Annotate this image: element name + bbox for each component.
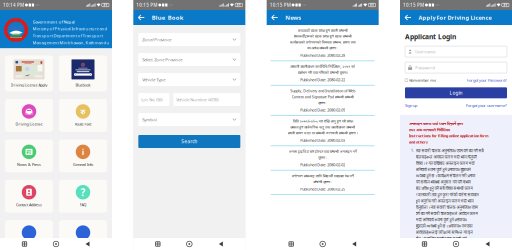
button[interactable]	[5, 220, 53, 250]
button[interactable]: Forgot your Password?	[467, 78, 507, 83]
staticText: अनला ड्राइभिङ बारे होल्डर पास सम्बन्धी अ…	[289, 149, 357, 154]
staticText: Route Fare	[74, 122, 91, 127]
staticText: 89	[503, 3, 507, 7]
staticText: Published Date: 2080-02-28	[300, 53, 345, 58]
staticText: FAQ	[79, 202, 86, 207]
staticText: Bluebook	[75, 82, 90, 87]
staticText: 10:14 PM	[3, 2, 24, 8]
staticText: Remember me	[409, 78, 436, 83]
staticText: Published Date: 2080-02-03	[300, 138, 345, 143]
button[interactable]: Driving License Apply	[5, 55, 53, 91]
button[interactable]: Bluebook	[59, 55, 107, 91]
button[interactable]: Back	[402, 10, 413, 25]
staticText: 89	[237, 3, 241, 7]
button[interactable]: News & Press	[5, 139, 53, 172]
staticText: 10:15 PM	[136, 2, 157, 8]
button[interactable]: Back	[480, 238, 494, 250]
button[interactable]: मनोनयन सम्बन्धाइ लागि शिक्षार्थी दरखास्त…	[271, 171, 375, 195]
staticText: Published Date: 2080-02-22	[300, 77, 345, 82]
button[interactable]: Back	[269, 10, 280, 25]
button[interactable]: Recent apps	[17, 238, 31, 250]
button[interactable]: मिति २०७९/०२/०५ गते देखि लागू हुने गरी प…	[271, 116, 375, 146]
button[interactable]: सरकारी सवारीसाधन कार्यविधि निर्देशिका, २…	[271, 61, 375, 86]
button[interactable]: Select Zone Province	[138, 53, 240, 66]
staticText: General Info	[73, 162, 93, 167]
button[interactable]: Zone/Province	[138, 33, 240, 46]
button[interactable]: Recent apps	[284, 238, 298, 250]
button[interactable]: Back	[136, 10, 147, 25]
button[interactable]: ?	[59, 180, 107, 213]
staticText: सम्बन्धी सूचना ।	[313, 179, 332, 184]
button[interactable]: Contact Address	[5, 180, 53, 213]
staticText: Instructions for filling online applicat…	[409, 133, 489, 138]
staticText: Contact Address	[16, 202, 42, 207]
button[interactable]: Search	[138, 135, 240, 148]
staticText: बुझाउने व्यवस्था हुने छ । प्रमाणपत्र नभए…	[416, 223, 473, 229]
button[interactable]	[59, 220, 107, 250]
staticText: नया सवारी चालक अनुमतिपत्र एवम वर्ग थप गर…	[416, 148, 484, 153]
staticText: संशोधन गरी पास गरिएको सम्बन्धी सूचना।	[298, 70, 348, 75]
staticText: Management Minbhawan, Kathmandu	[32, 40, 109, 45]
button[interactable]: Back	[80, 238, 94, 250]
button[interactable]: काठमाडौं सडक प्रदेश हुने सवारी सम्बन्धी	[271, 25, 375, 61]
staticText: गर्न सकिने ब्यवस्था अनुसार गर्न पर्ने मा…	[416, 179, 471, 185]
button[interactable]: Vehicle Type	[138, 73, 240, 86]
staticText: छैन । सम्बन्धित कार्यालयमा सम्पर्क गर्न	[416, 236, 467, 241]
staticText: Search	[181, 138, 197, 145]
staticText: का-प्रदेश सम्बन्धी सूचना ।	[307, 45, 338, 50]
staticText: 10:15 PM	[403, 2, 424, 8]
staticText: आवेदकहरूलाई परीक्षामा समिल्ल गराइने	[416, 230, 473, 235]
staticText: Password	[415, 65, 435, 70]
button[interactable]: Recent apps	[417, 238, 431, 250]
staticText: व्यवस्था हुने छ । कार्यक्रम संचालन गरी प…	[416, 173, 476, 178]
button[interactable]: Login	[405, 87, 507, 98]
staticText: Username	[415, 49, 435, 54]
staticText: 89	[370, 3, 374, 7]
button[interactable]: Home	[316, 238, 330, 250]
button[interactable]: General Info	[59, 139, 107, 172]
button[interactable]: रु	[59, 99, 107, 132]
button[interactable]: Symbol	[138, 113, 240, 126]
button[interactable]: Home	[49, 238, 63, 250]
staticText: बाट प्रविष्ट हुनु पर्ने सबै विषय सम्बन्ध…	[416, 186, 473, 191]
staticText: कार्यक्रमको मनोनयनको विषयमा सम्बन्ध, सूच…	[290, 40, 356, 44]
staticText: सकिने छ । सबै आवेदकहरूले अनलाइन फारम	[416, 242, 480, 247]
staticText: Zone/Province	[142, 37, 171, 42]
staticText: 10:15 PM	[270, 2, 291, 8]
staticText: and others	[409, 140, 428, 145]
staticText: Driving License Apply	[10, 82, 47, 87]
staticText: मिति २०७९/०२/०५ गते देखि लागू हुने गरी प…	[293, 119, 353, 124]
button[interactable]: Back	[347, 238, 361, 250]
staticText: सरकार हुने सार्वजनिक वाडु तया सवारीसाधन …	[290, 125, 355, 129]
button[interactable]: Supply, Delivery and Installation of Web	[271, 86, 375, 116]
staticText: रु	[80, 106, 85, 117]
staticText: News	[285, 13, 301, 21]
button[interactable]: Home	[449, 238, 463, 250]
staticText: Select Zone Province	[142, 57, 182, 62]
staticText: मनोनयन सम्बन्धाइ लागि शिक्षार्थी दरखास्त…	[292, 173, 354, 178]
staticText: हुन अनुरोध गरी अनलाइन फारम भर्दा ध्यान	[416, 198, 474, 204]
staticText: सरकारी सवारीसाधन कार्यविधि निर्देशिका, २…	[290, 64, 355, 69]
staticText: तथा अन्य जानकारी निर्देशिका	[409, 127, 450, 132]
staticText: सूचना ।	[318, 155, 327, 160]
button[interactable]: Home	[182, 238, 196, 250]
button[interactable]: Sign up	[405, 103, 417, 108]
button[interactable]: Driving License	[5, 99, 53, 132]
button[interactable]: Back	[214, 238, 228, 250]
staticText: चालकहरूले आवेदन फारम भर्दा ध्यान दिनुपर्…	[416, 154, 477, 160]
staticText: Published Date: 2080-02-02	[300, 162, 345, 167]
staticText: अनलाइन फारम भर्दा ध्यान दिनुपर्ने कुरा	[409, 121, 463, 126]
staticText: Published Date: 2080-02-25	[300, 187, 345, 192]
staticText: Applicant Login	[405, 32, 456, 41]
staticText: अनिवार्य रूपमा पुर्ण हुने प्रमाणपत्र बुझ…	[416, 167, 471, 172]
staticText: News & Press	[17, 162, 41, 167]
staticText: भर्दा अनिवार्य रूपमा पुर्ण हुने प्रमाणपत…	[416, 217, 467, 222]
staticText: Sign up	[405, 103, 417, 108]
button[interactable]: अनला ड्राइभिङ बारे होल्डर पास सम्बन्धी अ…	[271, 146, 375, 171]
staticText: Login	[449, 90, 462, 96]
staticText: वर्ग थप गर्ने सवारी चालकहरूले आवेदन फारम	[416, 211, 478, 216]
staticText: Ministry of Physical Infrastructure and	[32, 26, 107, 31]
button[interactable]: Forgot your username?	[466, 103, 507, 108]
button[interactable]: Recent apps	[151, 238, 165, 250]
